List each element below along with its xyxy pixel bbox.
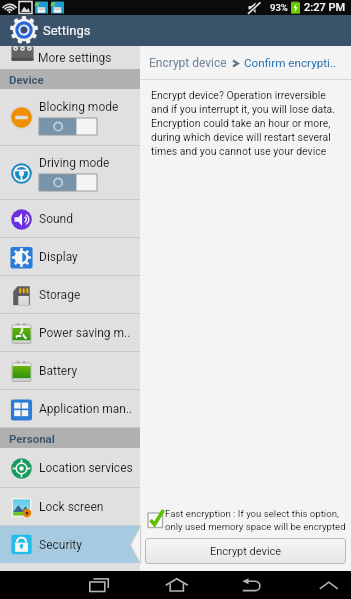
staticText: Battery <box>39 364 78 378</box>
staticText: Lock screen <box>39 500 104 514</box>
button[interactable]: Fast encryption : If you select this opt… <box>146 507 346 531</box>
staticText: Settings <box>43 23 91 38</box>
button[interactable]: Location services <box>0 448 140 488</box>
button[interactable] <box>39 174 97 191</box>
staticText: Encrypt device <box>210 545 282 558</box>
staticText: Application man.. <box>39 402 133 416</box>
button[interactable]: More settings <box>0 46 140 69</box>
staticText: Confirm encrypti.. <box>244 56 337 70</box>
staticText: Storage <box>39 288 81 302</box>
button[interactable]: Security <box>0 526 140 563</box>
staticText: 93% <box>270 2 288 13</box>
staticText: Location services <box>39 461 133 475</box>
button[interactable]: Application man.. <box>0 390 140 428</box>
staticText: Display <box>39 250 78 264</box>
staticText: Personal <box>9 432 55 445</box>
button[interactable]: Encrypt device <box>149 46 351 80</box>
button[interactable]: Sound <box>0 200 140 238</box>
staticText: Blocking mode <box>39 100 119 114</box>
button[interactable] <box>39 118 97 135</box>
staticText: Security <box>39 538 82 552</box>
button[interactable]: Back <box>232 571 273 599</box>
button[interactable]: Settings <box>0 15 351 46</box>
staticText: Encrypt device? Operation irreversible a… <box>151 89 336 157</box>
button[interactable]: Hide navigation bar <box>308 571 349 599</box>
staticText: Power saving m.. <box>39 326 131 340</box>
staticText: 2:27 PM <box>304 1 346 14</box>
staticText: Encrypt device <box>149 56 227 70</box>
button[interactable]: Home <box>156 571 197 599</box>
button[interactable]: Blocking mode <box>0 89 140 146</box>
staticText: More settings <box>38 51 112 65</box>
staticText: Sound <box>39 212 73 226</box>
staticText: Fast encryption : If you select this opt… <box>165 508 346 532</box>
button[interactable]: Recent apps <box>79 571 120 599</box>
staticText: Device <box>9 73 44 86</box>
button[interactable]: Power saving m.. <box>0 314 140 352</box>
button[interactable]: Driving mode <box>0 146 140 200</box>
button[interactable]: Encrypt device <box>145 538 346 564</box>
button[interactable]: Lock screen <box>0 488 140 526</box>
button[interactable]: Display <box>0 238 140 276</box>
button[interactable]: Storage <box>0 276 140 314</box>
staticText: Driving mode <box>39 156 110 170</box>
button[interactable]: Battery <box>0 352 140 390</box>
